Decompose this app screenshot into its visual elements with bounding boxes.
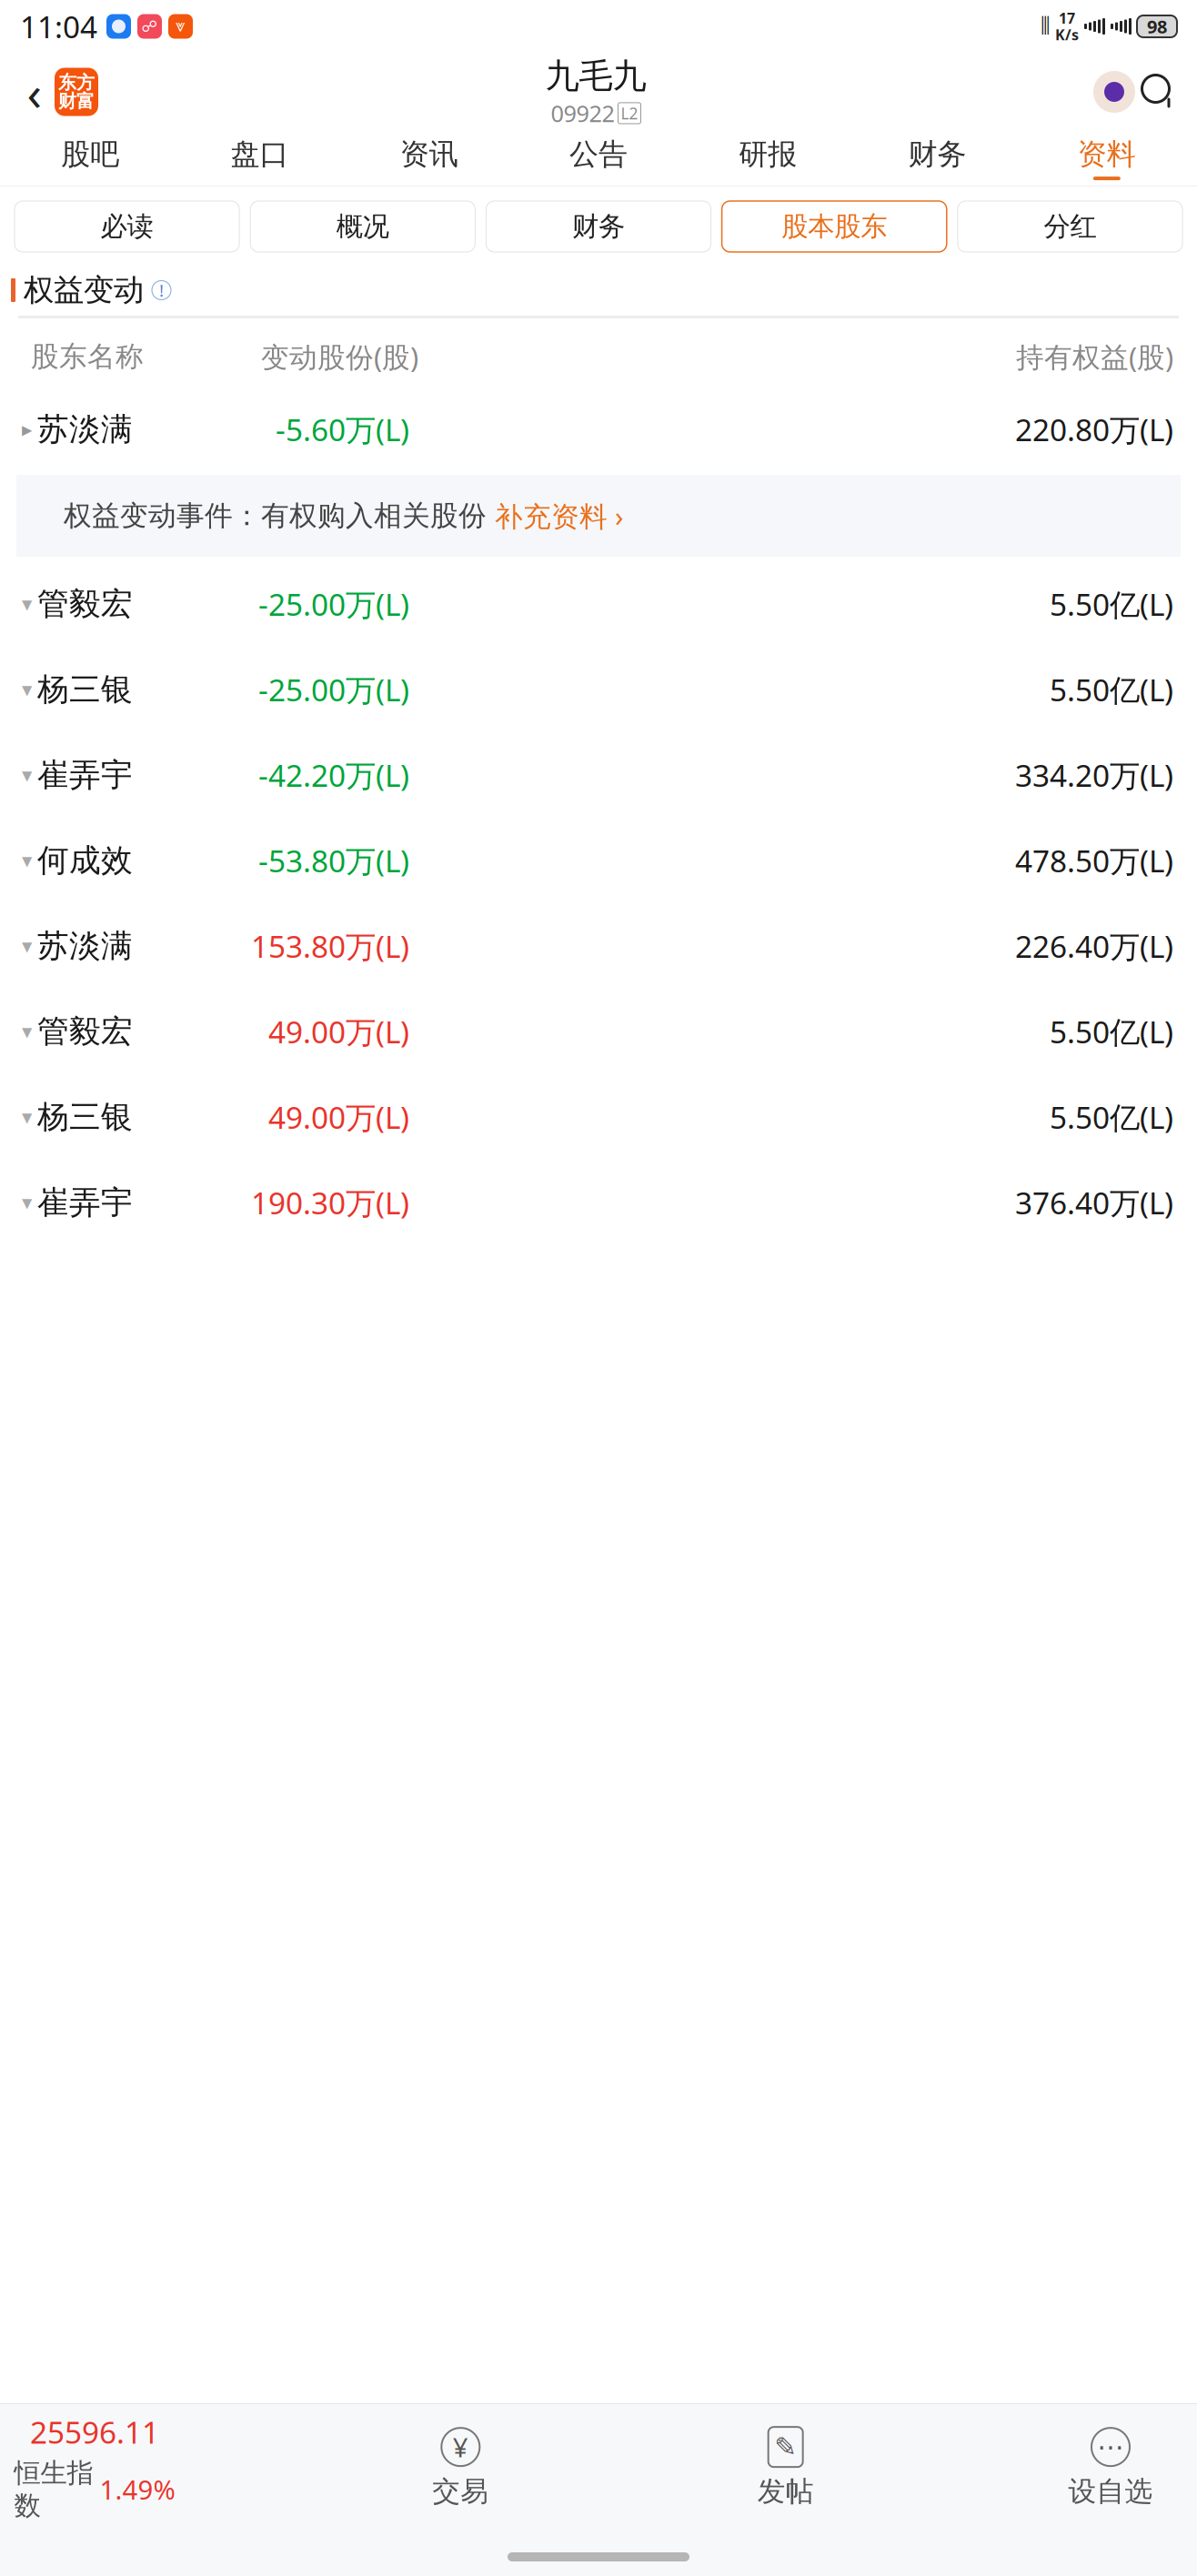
- staticText: 财富: [58, 90, 95, 112]
- button[interactable]: 25596.11: [4, 2412, 186, 2522]
- staticText: 5.50亿(L): [1050, 669, 1173, 710]
- button[interactable]: 股吧: [5, 132, 175, 185]
- staticText: 权益变动事件：有权购入相关股份: [64, 499, 495, 533]
- button[interactable]: 财务: [853, 132, 1022, 185]
- staticText: 220.80万(L): [1015, 409, 1173, 450]
- button[interactable]: ▾: [0, 728, 1197, 813]
- staticText: ▾: [22, 849, 32, 872]
- staticText: 股东名称: [31, 339, 144, 374]
- button[interactable]: ¥: [410, 2425, 511, 2509]
- staticText: 334.20万(L): [1015, 755, 1173, 795]
- button[interactable]: 智能助手: [1093, 71, 1135, 113]
- button[interactable]: ▾: [0, 642, 1197, 728]
- staticText: 盘口: [230, 136, 289, 172]
- button[interactable]: ✎: [736, 2425, 836, 2509]
- staticText: 管毅宏: [37, 585, 133, 623]
- staticText: ▾: [22, 1020, 32, 1043]
- staticText: K/s: [1055, 25, 1079, 44]
- staticText: ▾: [22, 678, 32, 701]
- staticText: 必读: [101, 210, 153, 243]
- button[interactable]: 公告: [514, 132, 683, 185]
- staticText: ☍: [141, 17, 158, 35]
- staticText: 分红: [1044, 210, 1096, 243]
- staticText: 478.50万(L): [1015, 840, 1173, 881]
- staticText: -53.80万(L): [258, 840, 409, 881]
- staticText: 恒生指数: [14, 2456, 93, 2522]
- staticText: 股吧: [61, 136, 119, 172]
- staticText: 九毛九: [545, 55, 646, 97]
- staticText: -5.60万(L): [276, 409, 409, 450]
- staticText: 5.50亿(L): [1050, 1011, 1173, 1052]
- staticText: 持有权益(股): [1016, 338, 1173, 375]
- staticText: ▾: [22, 763, 32, 787]
- staticText: ⋯: [1097, 2432, 1124, 2462]
- staticText: 17: [1059, 8, 1075, 28]
- button[interactable]: 研报: [683, 132, 853, 185]
- staticText: 资料: [1078, 136, 1136, 172]
- button[interactable]: ▾: [0, 557, 1197, 642]
- staticText: 研报: [739, 136, 797, 172]
- button[interactable]: 股本股东: [722, 201, 947, 252]
- staticText: 崔弄宇: [37, 1183, 133, 1222]
- staticText: ¥: [453, 2429, 468, 2465]
- staticText: 226.40万(L): [1015, 926, 1173, 966]
- staticText: ▾: [22, 1191, 32, 1214]
- staticText: ▸: [22, 418, 32, 441]
- staticText: 25596.11: [30, 2412, 159, 2452]
- staticText: 190.30万(L): [251, 1182, 409, 1223]
- staticText: 管毅宏: [37, 1012, 133, 1051]
- staticText: 1.49%: [100, 2472, 175, 2507]
- button[interactable]: ▾: [0, 813, 1197, 899]
- staticText: 东方: [58, 71, 95, 94]
- staticText: 376.40万(L): [1015, 1182, 1173, 1223]
- staticText: 财务: [908, 136, 967, 172]
- staticText: 权益变动: [24, 272, 144, 309]
- staticText: 变动股份(股): [261, 338, 418, 375]
- staticText: 杨三银: [37, 670, 133, 709]
- button[interactable]: 资讯: [344, 132, 514, 185]
- staticText: ▾: [22, 934, 32, 958]
- staticText: 财务: [572, 210, 625, 243]
- staticText: -42.20万(L): [258, 755, 409, 795]
- staticText: ▾: [22, 1105, 32, 1129]
- button[interactable]: ▾: [0, 1070, 1197, 1155]
- staticText: 苏淡满: [37, 410, 133, 449]
- button[interactable]: 资料: [1022, 132, 1192, 185]
- staticText: ✎: [774, 2432, 797, 2462]
- button[interactable]: 必读: [15, 201, 239, 252]
- button[interactable]: 搜索: [1135, 68, 1182, 116]
- staticText: 公告: [569, 136, 628, 172]
- button[interactable]: 财务: [486, 201, 711, 252]
- staticText: 09922: [551, 98, 614, 128]
- button[interactable]: ▾: [0, 984, 1197, 1070]
- staticText: 崔弄宇: [37, 756, 133, 794]
- staticText: 设自选: [1068, 2474, 1153, 2509]
- staticText: 49.00万(L): [268, 1097, 409, 1137]
- staticText: 资讯: [400, 136, 458, 172]
- button[interactable]: ▸: [0, 395, 1197, 464]
- staticText: ‹: [27, 60, 42, 124]
- staticText: ⩔: [176, 18, 186, 35]
- button[interactable]: 概况: [250, 201, 475, 252]
- staticText: 概况: [336, 210, 389, 243]
- button[interactable]: 返回: [15, 65, 55, 119]
- button[interactable]: 权益变动事件：有权购入相关股份: [0, 464, 1197, 557]
- button[interactable]: 东方财富: [55, 68, 98, 116]
- staticText: 杨三银: [37, 1098, 133, 1136]
- staticText: 11:04: [20, 6, 97, 47]
- staticText: 发帖: [757, 2474, 814, 2509]
- staticText: 何成效: [37, 841, 133, 880]
- button[interactable]: 盘口: [175, 132, 344, 185]
- staticText: 5.50亿(L): [1050, 1097, 1173, 1137]
- button[interactable]: 说明: [152, 281, 171, 300]
- staticText: ⫼: [1041, 16, 1050, 36]
- button[interactable]: ▾: [0, 1155, 1197, 1241]
- staticText: 49.00万(L): [268, 1011, 409, 1052]
- staticText: -25.00万(L): [258, 584, 409, 624]
- staticText: ▾: [22, 592, 32, 616]
- staticText: 补充资料 ›: [495, 497, 624, 534]
- button[interactable]: ⋯: [1061, 2425, 1161, 2509]
- button[interactable]: ▾: [0, 899, 1197, 984]
- staticText: -25.00万(L): [258, 669, 409, 710]
- button[interactable]: 分红: [958, 201, 1182, 252]
